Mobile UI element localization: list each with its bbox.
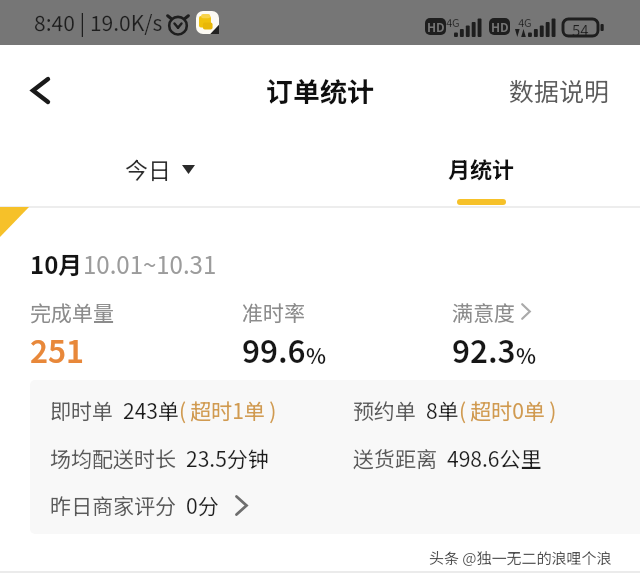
- staticText: 99.6: [242, 327, 306, 372]
- staticText: 92.3: [452, 327, 516, 372]
- staticText: 8:40 | 19.0K/s: [34, 7, 163, 37]
- staticText: 订单统计: [266, 71, 374, 110]
- staticText: ( 超时1单 ): [179, 395, 277, 425]
- staticText: 54: [572, 19, 589, 36]
- staticText: 数据说明: [509, 72, 610, 108]
- staticText: 23.5分钟: [186, 443, 269, 473]
- button[interactable]: Back: [15, 65, 65, 115]
- button[interactable]: 数据说明: [509, 72, 610, 108]
- staticText: 月统计: [448, 152, 515, 184]
- staticText: 8单: [426, 395, 459, 425]
- staticText: 今日: [125, 152, 171, 185]
- staticText: 498.6公里: [447, 443, 542, 473]
- staticText: 送货距离: [353, 443, 437, 473]
- staticText: 准时率: [242, 297, 305, 327]
- staticText: 0分: [186, 490, 219, 520]
- staticText: 预约单: [353, 395, 416, 425]
- staticText: HD: [491, 18, 509, 35]
- button[interactable]: 月统计: [448, 152, 515, 205]
- staticText: 头条 @独一无二的浪哩个浪: [429, 547, 612, 569]
- staticText: %: [516, 340, 536, 370]
- staticText: 满意度: [452, 297, 515, 327]
- staticText: 243单: [123, 395, 179, 425]
- staticText: %: [306, 340, 326, 370]
- staticText: 10月: [30, 246, 83, 281]
- staticText: 251: [30, 327, 84, 372]
- staticText: 昨日商家评分: [50, 490, 176, 520]
- staticText: HD: [427, 18, 445, 35]
- staticText: 场均配送时长: [50, 443, 176, 473]
- staticText: 10.01~10.31: [83, 246, 217, 281]
- staticText: 完成单量: [30, 297, 114, 327]
- staticText: ( 超时0单 ): [459, 395, 557, 425]
- button[interactable]: 今日: [125, 152, 195, 185]
- staticText: 即时单: [50, 395, 113, 425]
- button[interactable]: 昨日商家评分: [50, 490, 248, 520]
- staticText: 4G: [518, 14, 532, 30]
- staticText: 4G: [446, 14, 460, 30]
